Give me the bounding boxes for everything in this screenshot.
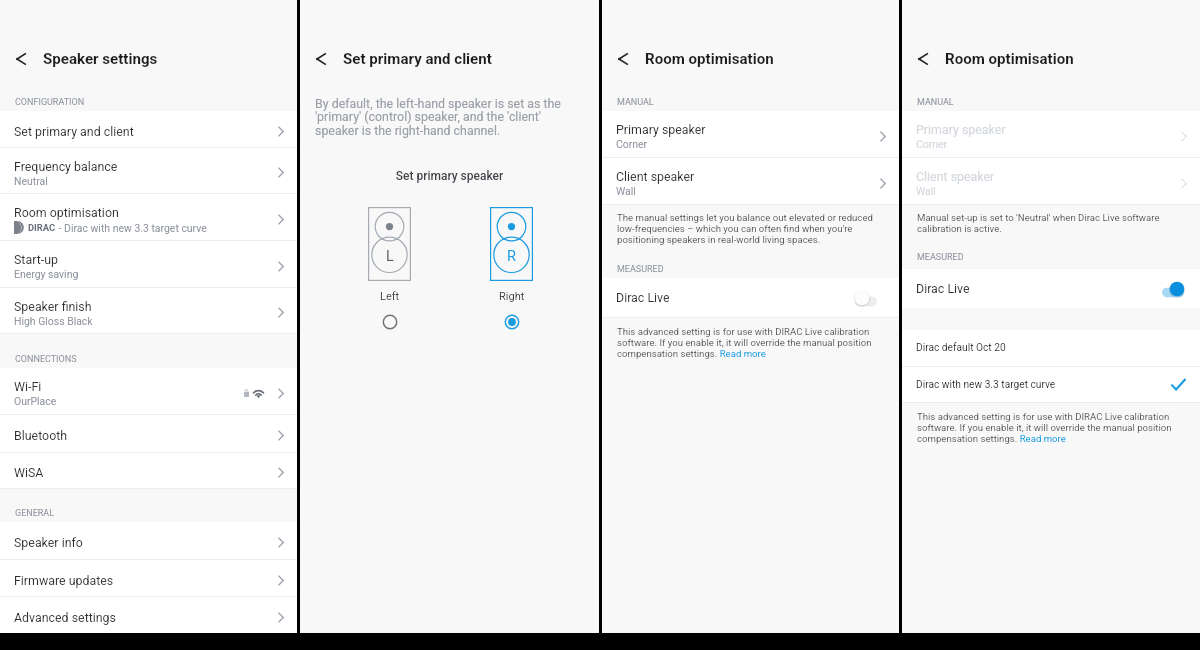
button[interactable]: Dirac Live toggle <box>855 287 885 309</box>
button[interactable]: Speaker finish <box>0 288 297 333</box>
button[interactable]: Wi-Fi <box>0 368 297 414</box>
staticText: Primary speaker <box>616 122 706 137</box>
staticText: Room optimisation <box>14 205 119 220</box>
staticText: Primary speaker <box>916 122 1006 137</box>
button[interactable]: Speaker info <box>0 522 297 559</box>
staticText: Energy saving <box>14 268 79 280</box>
staticText: Client speaker <box>616 169 695 184</box>
button[interactable]: Right <box>501 311 523 333</box>
button[interactable]: Back <box>608 44 638 74</box>
button[interactable]: Room optimisation <box>0 194 297 240</box>
staticText: Right <box>499 290 525 303</box>
button[interactable]: Frequency balance <box>0 148 297 193</box>
staticText: Corner <box>916 138 948 150</box>
staticText: DIRAC <box>28 222 56 233</box>
staticText: Room optimisation <box>645 50 774 68</box>
button[interactable]: Primary speaker <box>602 111 899 157</box>
button[interactable]: Back <box>908 44 938 74</box>
button[interactable]: Primary speaker <box>902 111 1200 157</box>
button[interactable]: Dirac default Oct 20 <box>902 330 1200 366</box>
button[interactable]: Back <box>306 44 336 74</box>
staticText: CONFIGURATION <box>15 97 85 108</box>
staticText: Advanced settings <box>14 610 116 625</box>
staticText: Dirac Live <box>616 290 855 305</box>
staticText: High Gloss Black <box>14 315 93 327</box>
staticText: MANUAL <box>617 97 654 108</box>
staticText: Firmware updates <box>14 573 114 588</box>
staticText: Set primary and client <box>343 50 492 68</box>
staticText: Wi-Fi <box>14 379 42 394</box>
staticText: GENERAL <box>15 508 55 519</box>
staticText: Wall <box>616 185 636 197</box>
staticText: Bluetooth <box>14 428 68 443</box>
staticText: CONNECTIONS <box>15 354 77 365</box>
button[interactable]: Bluetooth <box>0 415 297 452</box>
staticText: Speaker settings <box>43 50 158 68</box>
staticText: Manual set-up is set to 'Neutral' when D… <box>917 212 1186 234</box>
button[interactable]: Back <box>6 44 36 74</box>
button[interactable]: Dirac with new 3.3 target curve <box>902 367 1200 402</box>
button[interactable]: Start-up <box>0 241 297 287</box>
button[interactable]: Dirac Live <box>602 278 899 317</box>
staticText: The manual settings let you balance out … <box>617 212 885 245</box>
staticText: Corner <box>616 138 648 150</box>
staticText: Client speaker <box>916 169 995 184</box>
staticText: Dirac Live <box>916 281 1156 296</box>
staticText: Dirac with new 3.3 target curve <box>916 379 1171 391</box>
staticText: This advanced setting is for use with DI… <box>617 326 885 359</box>
button[interactable]: Client speaker <box>602 158 899 204</box>
button[interactable]: Client speaker <box>902 158 1200 204</box>
button[interactable]: Advanced settings <box>0 597 297 633</box>
button[interactable]: Set primary and client <box>0 111 297 147</box>
staticText: This advanced setting is for use with DI… <box>917 411 1186 444</box>
staticText: MEASURED <box>617 264 664 275</box>
staticText: L <box>386 248 394 265</box>
button[interactable]: Firmware updates <box>0 560 297 596</box>
staticText: Set primary and client <box>14 124 134 139</box>
staticText: - Dirac with new 3.3 target curve <box>56 222 207 234</box>
staticText: R <box>507 248 516 265</box>
staticText: OurPlace <box>14 395 57 407</box>
staticText: MANUAL <box>917 97 954 108</box>
staticText: Set primary speaker <box>300 169 599 183</box>
staticText: Speaker info <box>14 535 83 550</box>
staticText: Start-up <box>14 252 58 267</box>
staticText: Left <box>380 290 400 303</box>
staticText: Speaker finish <box>14 299 92 314</box>
button[interactable]: Dirac Live <box>902 269 1200 308</box>
button[interactable]: Dirac Live toggle <box>1156 278 1186 300</box>
staticText: Room optimisation <box>945 50 1074 68</box>
staticText: Dirac default Oct 20 <box>916 342 1186 354</box>
staticText: Frequency balance <box>14 159 118 174</box>
staticText: MEASURED <box>917 252 964 263</box>
staticText: Wall <box>916 185 936 197</box>
button[interactable]: Left <box>379 311 401 333</box>
staticText: By default, the left-hand speaker is set… <box>315 96 566 138</box>
button[interactable]: WiSA <box>0 453 297 488</box>
staticText: Neutral <box>14 175 48 187</box>
staticText: WiSA <box>14 465 44 480</box>
